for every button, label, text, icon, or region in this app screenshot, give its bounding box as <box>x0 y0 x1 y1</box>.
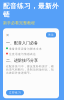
staticText: 在配音练习中，要反复聆听原片，模仿语气和断句，录制后回放对比，找出差距并改进细节… <box>6 65 54 75</box>
staticText: × <box>6 31 9 38</box>
staticText: 注意语速与情感表达 <box>9 53 36 56</box>
staticText: 准备录音设备与脚本文本 <box>9 47 42 51</box>
staticText: 立即练习 <box>9 91 21 94</box>
staticText: 一、配音入门必备 <box>6 40 38 45</box>
staticText: 二、进阶技巧分享 <box>6 58 38 63</box>
staticText: 关注 <box>48 33 54 36</box>
staticText: 配音练习，最新外链 <box>3 2 59 18</box>
staticText: 新手必看完整教程 <box>3 20 35 25</box>
